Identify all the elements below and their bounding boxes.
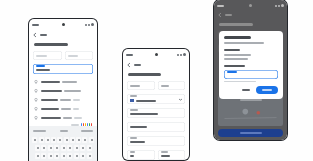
button[interactable] [29,104,97,113]
button[interactable] [224,70,278,79]
button[interactable] [127,94,185,104]
button[interactable] [39,137,44,143]
button[interactable] [239,87,253,93]
button[interactable] [35,153,40,159]
button[interactable] [51,137,56,143]
button[interactable] [218,129,283,137]
button[interactable] [87,145,92,151]
button[interactable] [82,137,87,143]
button[interactable] [127,150,155,160]
button[interactable] [29,95,97,104]
button[interactable] [127,136,185,146]
button[interactable] [33,64,93,74]
button[interactable] [48,153,53,159]
button[interactable] [29,77,97,86]
button[interactable] [33,51,62,60]
button[interactable] [29,113,97,122]
button[interactable] [127,108,185,118]
button[interactable]: Back [29,30,97,39]
button[interactable] [74,145,79,151]
button[interactable] [57,137,62,143]
button[interactable] [32,137,37,143]
button[interactable] [256,86,278,94]
button[interactable] [29,86,97,95]
button[interactable] [41,145,46,151]
button[interactable] [127,122,185,132]
button[interactable] [158,81,185,90]
button[interactable] [80,153,85,159]
button[interactable] [41,153,46,159]
button[interactable] [80,145,85,151]
button[interactable] [67,145,72,151]
button[interactable] [48,145,53,151]
button[interactable] [35,145,40,151]
button[interactable] [45,137,50,143]
button[interactable]: Back [123,60,189,69]
button[interactable] [54,153,59,159]
button[interactable] [70,137,75,143]
button[interactable]: Back [218,11,283,19]
button[interactable] [127,81,155,90]
button[interactable] [89,137,94,143]
button[interactable] [67,153,72,159]
button[interactable] [158,150,185,160]
button[interactable] [76,137,81,143]
button[interactable] [74,153,79,159]
button[interactable] [64,137,69,143]
button[interactable] [61,145,66,151]
button[interactable] [54,145,59,151]
button[interactable] [61,153,66,159]
button[interactable] [87,153,92,159]
button[interactable] [65,51,93,60]
